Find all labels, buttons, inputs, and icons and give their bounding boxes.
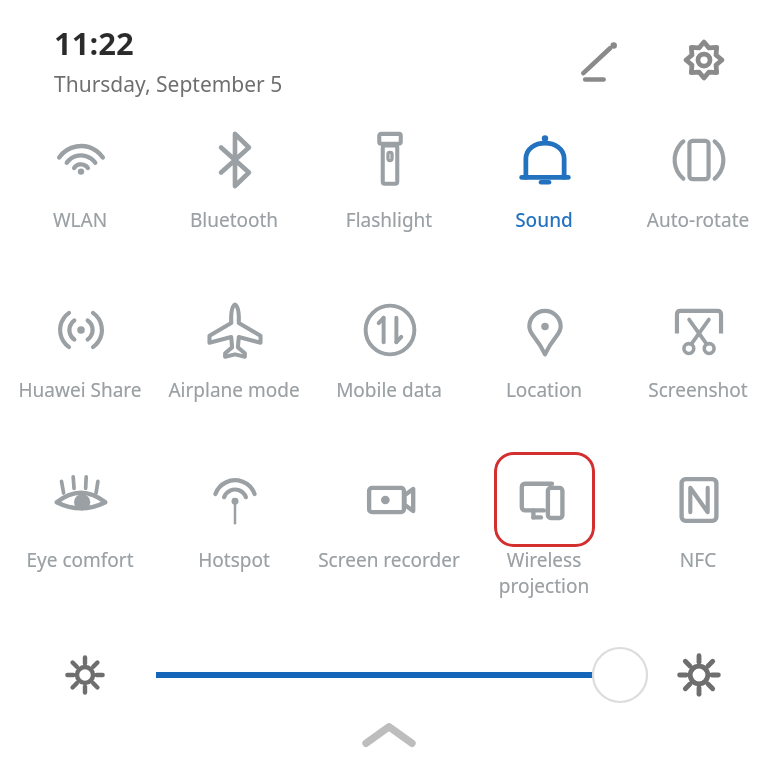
button[interactable]: Increase brightness bbox=[668, 644, 730, 706]
staticText: NFC bbox=[623, 547, 773, 573]
staticText: 11:22 bbox=[54, 22, 134, 64]
button[interactable]: Hotspot bbox=[159, 452, 309, 573]
staticText: Screenshot bbox=[623, 377, 773, 403]
staticText: Mobile data bbox=[314, 377, 464, 403]
button[interactable]: Auto-rotate bbox=[623, 112, 773, 233]
button[interactable]: Mobile data bbox=[314, 282, 464, 403]
button[interactable]: Screen recorder bbox=[314, 452, 464, 573]
staticText: Sound bbox=[469, 207, 619, 233]
button[interactable]: Settings bbox=[672, 28, 736, 92]
button[interactable]: Collapse panel bbox=[344, 716, 434, 750]
button[interactable]: Huawei Share bbox=[5, 282, 155, 403]
staticText: WLAN bbox=[5, 207, 155, 233]
staticText: Bluetooth bbox=[159, 207, 309, 233]
button[interactable]: Airplane mode bbox=[159, 282, 309, 403]
button[interactable]: Bluetooth bbox=[159, 112, 309, 233]
button[interactable]: Edit quick settings bbox=[567, 31, 631, 95]
staticText: Eye comfort bbox=[5, 547, 155, 573]
staticText: Screen recorder bbox=[314, 547, 464, 573]
button[interactable]: Brightness slider bbox=[140, 646, 660, 704]
staticText: Location bbox=[469, 377, 619, 403]
staticText: Huawei Share bbox=[5, 377, 155, 403]
button[interactable]: Location bbox=[469, 282, 619, 403]
staticText: Thursday, September 5 bbox=[54, 70, 283, 99]
button[interactable]: Wireless projection bbox=[469, 452, 619, 598]
staticText: Wireless projection bbox=[469, 547, 619, 598]
staticText: Airplane mode bbox=[159, 377, 309, 403]
staticText: Flashlight bbox=[314, 207, 464, 233]
staticText: Hotspot bbox=[159, 547, 309, 573]
button[interactable]: NFC bbox=[623, 452, 773, 573]
button[interactable]: Decrease brightness bbox=[56, 646, 114, 704]
button[interactable]: Screenshot bbox=[623, 282, 773, 403]
button[interactable]: Eye comfort bbox=[5, 452, 155, 573]
staticText: Auto-rotate bbox=[623, 207, 773, 233]
button[interactable]: Sound bbox=[469, 112, 619, 233]
button[interactable]: WLAN bbox=[5, 112, 155, 233]
button[interactable]: Flashlight bbox=[314, 112, 464, 233]
